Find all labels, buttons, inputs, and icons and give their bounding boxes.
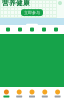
- button[interactable]: Tab: [38, 87, 51, 99]
- staticText: 营养健康: [2, 0, 30, 7]
- button[interactable]: Tab: [51, 87, 64, 99]
- button[interactable]: Quick action: [26, 26, 38, 33]
- button[interactable]: Tab: [26, 87, 38, 99]
- button[interactable]: Quick action: [50, 26, 62, 33]
- button[interactable]: Tab: [13, 87, 26, 99]
- button[interactable]: Quick action: [2, 26, 14, 33]
- button[interactable]: Tab: [0, 87, 13, 99]
- button[interactable]: Quick action: [14, 26, 26, 33]
- staticText: 立即参与: [24, 10, 40, 15]
- button[interactable]: Profile: [58, 1, 62, 5]
- button[interactable]: 立即参与: [21, 9, 43, 16]
- button[interactable]: Quick action: [38, 26, 50, 33]
